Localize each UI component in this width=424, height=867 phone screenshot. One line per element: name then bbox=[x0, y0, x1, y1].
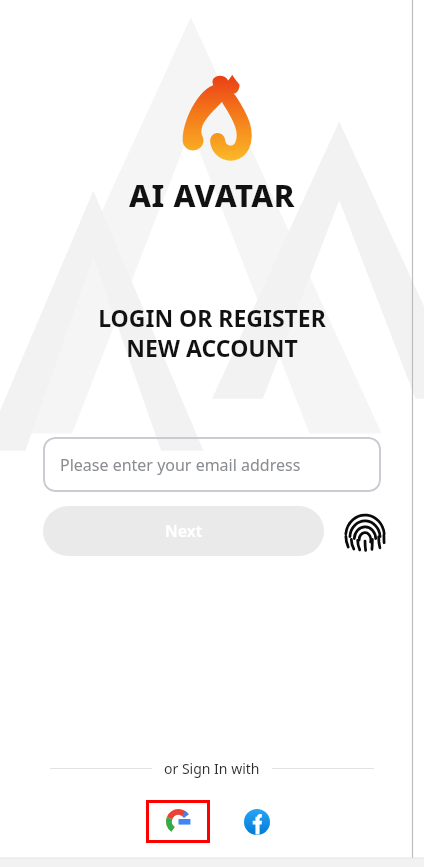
staticText: Please enter your email address bbox=[60, 454, 301, 476]
button[interactable]: Next bbox=[43, 506, 324, 556]
staticText: Next bbox=[165, 520, 203, 542]
button[interactable]: Please enter your email address bbox=[43, 437, 381, 492]
staticText: AI AVATAR bbox=[129, 174, 295, 216]
button[interactable]: Sign in with Google bbox=[146, 800, 210, 843]
staticText: or Sign In with bbox=[164, 759, 260, 778]
button[interactable]: Sign in with fingerprint bbox=[340, 506, 390, 556]
button[interactable]: Sign in with Facebook bbox=[235, 800, 278, 843]
staticText: LOGIN OR REGISTER NEW ACCOUNT bbox=[98, 302, 326, 363]
